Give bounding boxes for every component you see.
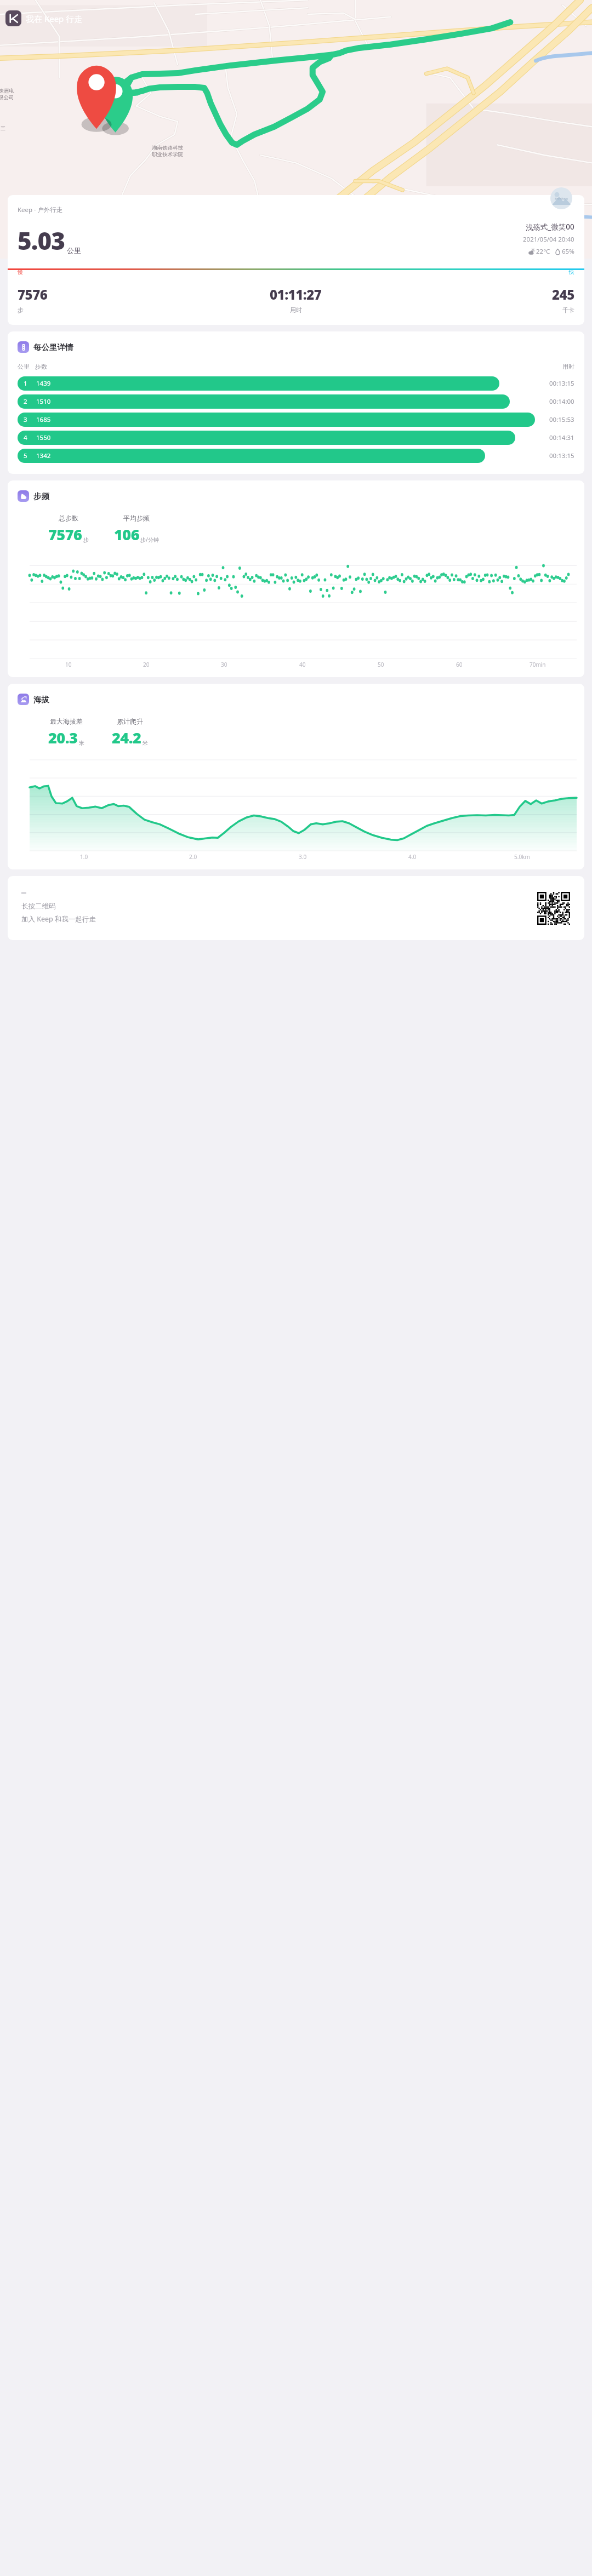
button[interactable]: 每公里详情 [18, 341, 73, 353]
button[interactable]: 2 [18, 394, 574, 409]
staticText: 总步数 [59, 514, 78, 522]
staticText: 米 [79, 740, 84, 747]
staticText: 00:13:15 [549, 379, 574, 388]
staticText: 浅殇式_微笑00 [526, 222, 574, 232]
staticText: 步 [83, 536, 89, 543]
staticText: 加入 Keep 和我一起行走 [21, 914, 96, 924]
staticText: 2.0 [189, 853, 197, 861]
button[interactable]: 海拔 [18, 694, 49, 705]
staticText: 我在 Keep 行走 [26, 13, 83, 24]
staticText: 累计爬升 [117, 717, 143, 725]
staticText: 5 [24, 451, 27, 460]
staticText: 24.2 [112, 728, 141, 748]
staticText: 2 [24, 397, 27, 406]
staticText: 245 [552, 285, 574, 304]
staticText: 用时 [562, 363, 574, 370]
staticText: 千卡 [562, 306, 574, 314]
staticText: 湖南铁路科技 职业技术学院 [152, 145, 183, 158]
staticText: 106 [114, 524, 139, 545]
staticText: 用时 [290, 306, 302, 314]
button[interactable]: 5 [18, 449, 574, 463]
staticText: 7576 [18, 285, 48, 304]
button[interactable]: 3 [18, 413, 574, 427]
button[interactable]: 1 [18, 376, 574, 391]
staticText: 每公里详情 [33, 342, 73, 352]
staticText: 7576 [48, 524, 82, 545]
staticText: 65% [562, 247, 574, 256]
button[interactable]: 4 [18, 431, 574, 445]
button[interactable]: Keep · 户外行走 [8, 195, 584, 325]
staticText: 2021/05/04 20:40 [523, 235, 574, 244]
staticText: 株洲电 限公司 [0, 88, 14, 101]
staticText: 步 [18, 306, 24, 314]
staticText: 4.0 [408, 853, 417, 861]
staticText: 三 [1, 125, 5, 131]
staticText: 30 [221, 661, 227, 668]
staticText: 20 [143, 661, 150, 668]
staticText: 步频 [33, 491, 49, 501]
staticText: 60 [456, 661, 463, 668]
staticText: 步数 [35, 363, 47, 370]
staticText: 5.03 [18, 224, 65, 257]
staticText: 1439 [36, 379, 51, 388]
staticText: 1510 [36, 397, 51, 406]
staticText: 70min [530, 661, 546, 668]
staticText: 00:14:31 [549, 433, 574, 442]
staticText: 5.0km [514, 853, 530, 861]
staticText: 40 [299, 661, 306, 668]
other: User avatar [550, 187, 572, 209]
staticText: 4 [24, 433, 27, 442]
staticText: 3 [24, 415, 27, 424]
staticText: 00:13:15 [549, 451, 574, 460]
staticText: 平均步频 [123, 514, 150, 522]
staticText: 3.0 [299, 853, 307, 861]
staticText: 步/分钟 [140, 536, 159, 543]
staticText: 1685 [36, 415, 51, 424]
staticText: 长按二维码 [21, 902, 56, 911]
staticText: 快 [569, 268, 574, 276]
staticText: 20.3 [48, 728, 78, 748]
other: QR code [537, 892, 570, 925]
staticText: Keep · 户外行走 [18, 205, 63, 214]
staticText: 海拔 [33, 695, 49, 705]
staticText: 最大海拔差 [50, 717, 83, 725]
staticText: 慢 [18, 268, 23, 276]
staticText: 00:15:53 [549, 415, 574, 424]
staticText: 米 [143, 740, 148, 747]
staticText: 01:11:27 [270, 285, 322, 304]
staticText: 暂时无法显示 [555, 197, 568, 200]
staticText: 1342 [36, 451, 51, 460]
button[interactable]: 步频 [18, 490, 49, 502]
staticText: 00:14:00 [549, 397, 574, 406]
staticText: 1.0 [80, 853, 88, 861]
staticText: 公里 [67, 246, 81, 255]
staticText: 1 [24, 379, 27, 388]
button[interactable]: 长按二维码 [8, 876, 584, 940]
staticText: 10 [65, 661, 72, 668]
button[interactable]: Keep logo [5, 10, 83, 26]
staticText: 公里 [18, 363, 30, 370]
other: Keep logo [5, 10, 21, 26]
staticText: 1550 [36, 433, 51, 442]
staticText: 22°C [536, 247, 550, 256]
staticText: 50 [378, 661, 384, 668]
